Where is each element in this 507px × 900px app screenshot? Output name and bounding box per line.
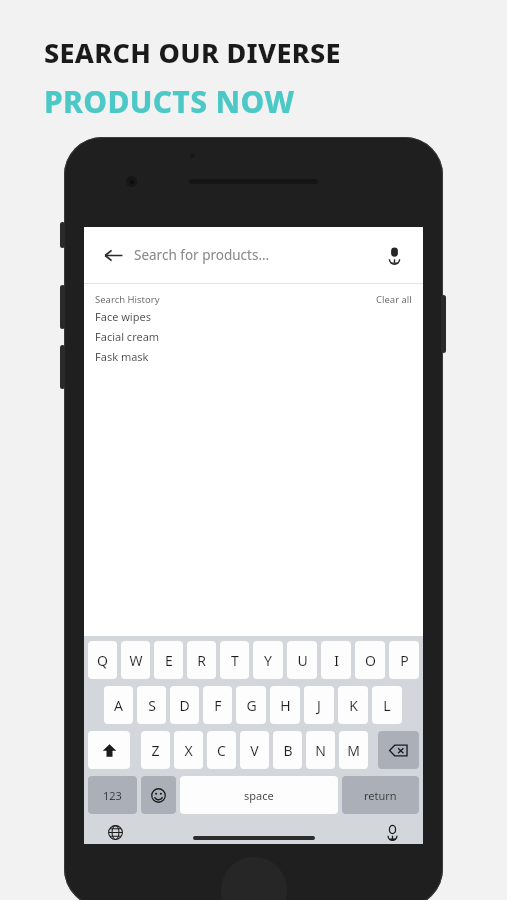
button[interactable]: N: [306, 731, 335, 769]
staticText: D: [179, 696, 190, 715]
staticText: Facial cream: [95, 329, 160, 344]
staticText: C: [217, 741, 226, 760]
staticText: H: [280, 696, 291, 715]
staticText: O: [365, 651, 376, 670]
staticText: 123: [103, 788, 122, 803]
staticText: F: [214, 696, 222, 715]
button[interactable]: S: [137, 686, 166, 724]
staticText: N: [315, 741, 326, 760]
staticText: W: [129, 651, 143, 670]
button[interactable]: Face wipes: [84, 306, 423, 326]
button[interactable]: Emoji: [141, 776, 176, 814]
button[interactable]: C: [207, 731, 236, 769]
button[interactable]: Fask mask: [84, 346, 423, 366]
button[interactable]: Facial cream: [84, 326, 423, 346]
staticText: Face wipes: [95, 309, 151, 324]
button[interactable]: 123: [88, 776, 137, 814]
staticText: Z: [151, 741, 160, 760]
staticText: Search for products...: [134, 246, 270, 264]
staticText: S: [148, 696, 156, 715]
button[interactable]: G: [236, 686, 266, 724]
button[interactable]: W: [121, 641, 150, 679]
button[interactable]: Shift: [88, 731, 130, 769]
staticText: PRODUCTS NOW: [44, 81, 507, 122]
button[interactable]: Voice search: [377, 238, 411, 272]
button[interactable]: D: [170, 686, 199, 724]
button[interactable]: Backspace: [378, 731, 419, 769]
button[interactable]: return: [342, 776, 419, 814]
staticText: V: [250, 741, 259, 760]
button[interactable]: E: [154, 641, 183, 679]
staticText: I: [334, 651, 339, 670]
staticText: X: [184, 741, 193, 760]
staticText: A: [114, 696, 123, 715]
button[interactable]: R: [187, 641, 216, 679]
staticText: SEARCH OUR DIVERSE: [44, 34, 507, 71]
button[interactable]: H: [270, 686, 300, 724]
button[interactable]: V: [240, 731, 269, 769]
staticText: Search History: [95, 293, 160, 306]
staticText: R: [197, 651, 206, 670]
staticText: M: [347, 741, 360, 760]
button[interactable]: space: [180, 776, 338, 814]
staticText: T: [231, 651, 239, 670]
button[interactable]: A: [104, 686, 133, 724]
button[interactable]: K: [338, 686, 368, 724]
button[interactable]: X: [174, 731, 203, 769]
button[interactable]: O: [355, 641, 385, 679]
staticText: B: [283, 741, 293, 760]
staticText: Q: [97, 651, 108, 670]
button[interactable]: Change keyboard language: [102, 820, 128, 844]
staticText: G: [246, 696, 257, 715]
button[interactable]: Clear all: [376, 293, 412, 306]
staticText: Clear all: [376, 293, 412, 306]
staticText: L: [383, 696, 391, 715]
button[interactable]: Back: [96, 238, 130, 272]
staticText: P: [400, 651, 409, 670]
staticText: U: [297, 651, 308, 670]
button[interactable]: U: [287, 641, 317, 679]
staticText: E: [165, 651, 173, 670]
staticText: K: [349, 696, 358, 715]
button[interactable]: Q: [88, 641, 117, 679]
button[interactable]: Z: [141, 731, 170, 769]
button[interactable]: Back: [84, 227, 423, 283]
staticText: Fask mask: [95, 349, 149, 364]
button[interactable]: Y: [253, 641, 283, 679]
button[interactable]: T: [220, 641, 249, 679]
staticText: J: [317, 696, 321, 715]
staticText: return: [364, 788, 397, 803]
button[interactable]: J: [304, 686, 334, 724]
button[interactable]: L: [372, 686, 402, 724]
button[interactable]: B: [273, 731, 302, 769]
button[interactable]: I: [321, 641, 351, 679]
button[interactable]: F: [203, 686, 232, 724]
staticText: space: [244, 788, 274, 803]
staticText: Y: [264, 651, 272, 670]
button[interactable]: M: [339, 731, 368, 769]
button[interactable]: P: [389, 641, 419, 679]
button[interactable]: Voice input: [379, 820, 405, 844]
